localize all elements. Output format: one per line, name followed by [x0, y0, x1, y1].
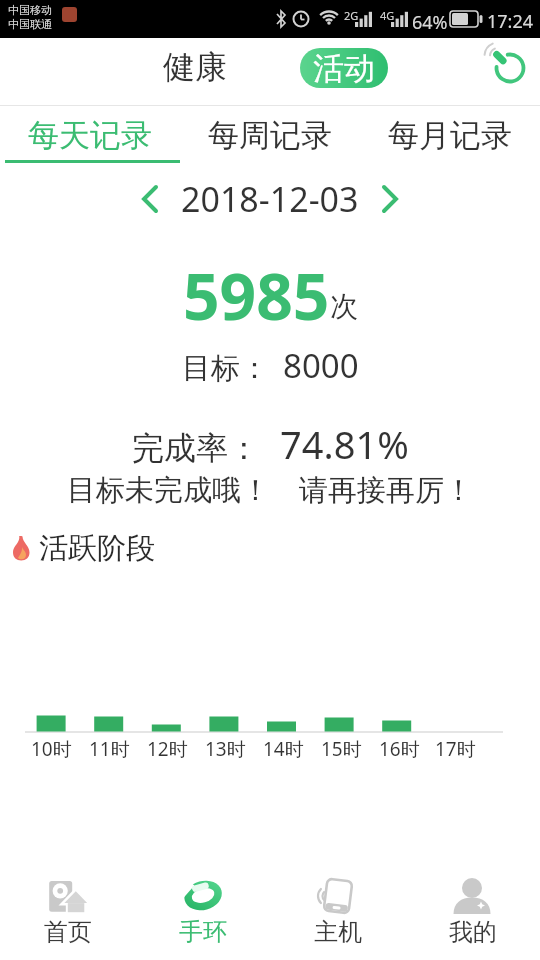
staticText: 5985	[183, 252, 330, 332]
staticText: 每月记录	[388, 116, 512, 155]
button[interactable]: 手环	[135, 860, 270, 960]
staticText: 16时	[379, 736, 420, 762]
staticText: 14时	[263, 736, 304, 762]
staticText: 次	[330, 289, 358, 324]
staticText: 64%	[412, 10, 448, 35]
staticText: 17:24	[487, 9, 534, 34]
button[interactable]: 我的	[405, 860, 540, 960]
staticText: 每天记录	[28, 116, 152, 155]
staticText: 手环	[179, 917, 227, 947]
button[interactable]	[484, 40, 528, 84]
button[interactable]: 主机	[270, 860, 405, 960]
staticText: 2G	[344, 8, 359, 23]
staticText: 4G	[380, 8, 395, 23]
button[interactable]: 每天记录	[0, 106, 180, 164]
button[interactable]: 健康	[158, 38, 232, 96]
staticText: 首页	[44, 917, 92, 947]
button[interactable]: 首页	[0, 860, 135, 960]
staticText: 2018-12-03	[181, 176, 359, 222]
staticText: 活跃阶段	[39, 530, 155, 567]
staticText: 10时	[31, 736, 72, 762]
staticText: 15时	[321, 736, 362, 762]
button[interactable]: 每月记录	[360, 106, 540, 164]
staticText: 12时	[147, 736, 188, 762]
button[interactable]	[377, 182, 403, 216]
staticText: 主机	[314, 917, 362, 947]
staticText: 中国移动	[8, 3, 52, 17]
staticText: 13时	[205, 736, 246, 762]
staticText: 健康	[163, 47, 227, 87]
staticText: 每周记录	[208, 116, 332, 155]
staticText: 11时	[89, 736, 130, 762]
staticText: 完成率：	[132, 428, 260, 468]
button[interactable]: 每周记录	[180, 106, 360, 164]
button[interactable]: 活动	[300, 48, 388, 88]
staticText: 74.81%	[280, 418, 409, 460]
staticText: 目标：	[182, 350, 269, 387]
staticText: 17时	[435, 736, 476, 762]
staticText: 我的	[449, 917, 497, 947]
staticText: 8000	[283, 343, 359, 385]
button[interactable]	[137, 182, 163, 216]
staticText: 目标未完成哦！ 请再接再厉！	[67, 469, 473, 509]
staticText: 中国联通	[8, 17, 52, 31]
staticText: 活动	[313, 49, 375, 88]
